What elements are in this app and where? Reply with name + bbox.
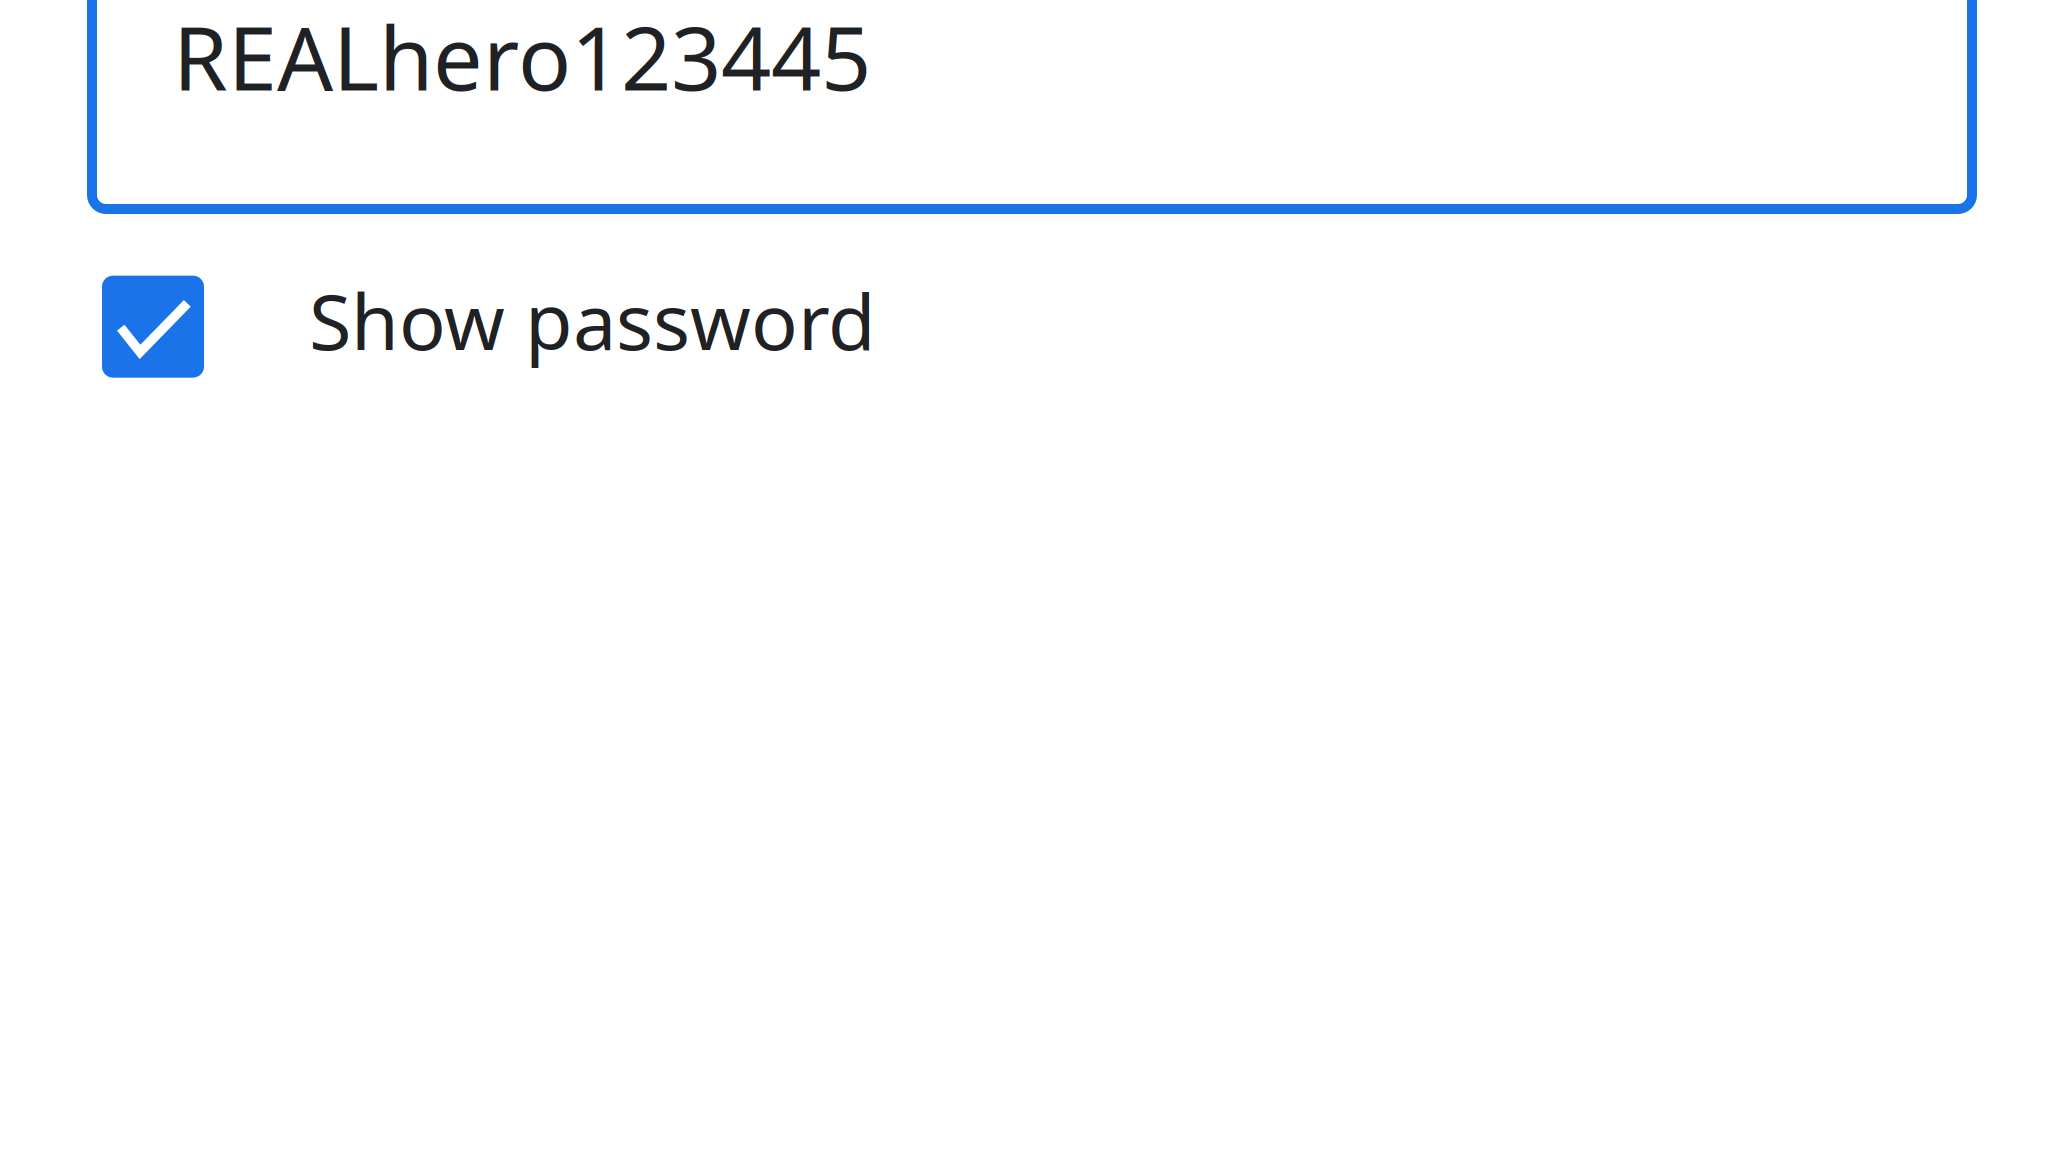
staticText: REALhero123445 [173, 0, 871, 115]
button[interactable]: Show password [102, 276, 977, 378]
staticText: Show password [309, 269, 876, 371]
